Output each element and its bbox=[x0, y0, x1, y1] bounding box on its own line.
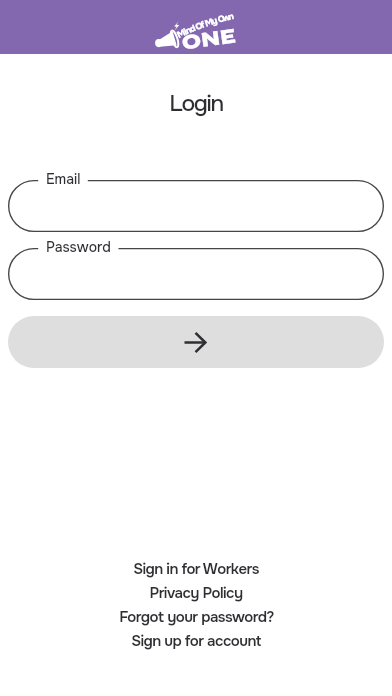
staticText: Login bbox=[0, 89, 392, 118]
staticText: Password bbox=[46, 238, 111, 256]
button[interactable]: Password bbox=[8, 248, 384, 300]
staticText: Privacy Policy bbox=[149, 583, 243, 602]
staticText: Sign up for account bbox=[131, 631, 261, 650]
staticText: Forgot your password? bbox=[119, 607, 274, 626]
staticText: Email bbox=[46, 170, 81, 188]
button[interactable]: Continue bbox=[8, 316, 384, 368]
button[interactable]: Sign in for Workers bbox=[0, 556, 392, 580]
other: Mind Of My Own ONE bbox=[153, 5, 239, 49]
button[interactable]: Privacy Policy bbox=[0, 580, 392, 604]
button[interactable]: Email bbox=[8, 180, 384, 232]
button[interactable]: Forgot your password? bbox=[0, 604, 392, 628]
button[interactable]: Sign up for account bbox=[0, 628, 392, 652]
staticText: Sign in for Workers bbox=[133, 559, 259, 578]
